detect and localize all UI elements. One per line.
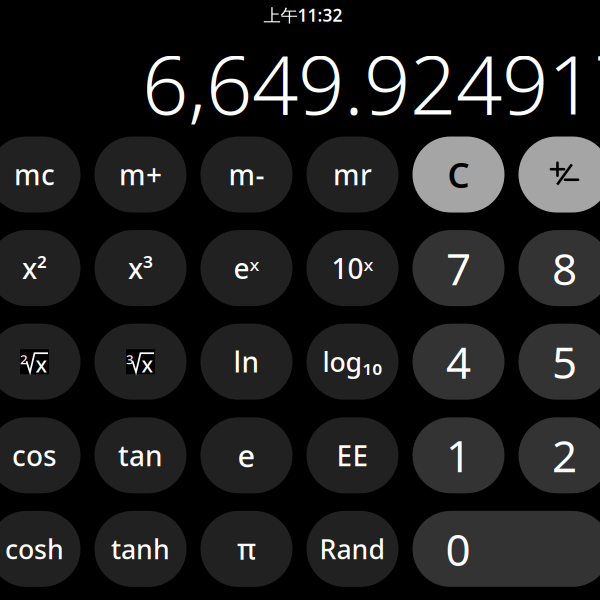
staticText: tan (118, 437, 163, 474)
button[interactable] (412, 324, 504, 400)
button[interactable] (306, 324, 398, 400)
staticText: x (35, 350, 47, 378)
staticText: 8 (552, 239, 577, 297)
button[interactable] (0, 417, 80, 493)
button[interactable] (306, 417, 398, 493)
button[interactable] (518, 324, 600, 400)
button[interactable] (306, 511, 398, 587)
staticText: mc (14, 156, 55, 193)
button[interactable] (0, 136, 80, 212)
staticText: 0 (445, 520, 470, 578)
button[interactable] (412, 417, 504, 493)
button[interactable] (94, 511, 186, 587)
button[interactable] (518, 417, 600, 493)
staticText: Rand (319, 531, 385, 567)
button[interactable] (94, 230, 186, 306)
button[interactable]: Plus minus (518, 136, 600, 212)
staticText: 10ˣ (331, 249, 373, 287)
staticText: 2 (552, 426, 577, 484)
button[interactable] (0, 324, 80, 400)
button[interactable] (200, 417, 292, 493)
staticText: log₁₀ (322, 344, 382, 379)
staticText: 6,649.9249173 (142, 29, 600, 137)
button[interactable] (306, 136, 398, 212)
staticText: 3 (126, 350, 134, 368)
button[interactable] (0, 511, 80, 587)
button[interactable] (200, 230, 292, 306)
staticText: cosh (5, 531, 64, 567)
button[interactable] (200, 136, 292, 212)
button[interactable] (412, 230, 504, 306)
button[interactable] (518, 230, 600, 306)
staticText: cos (12, 437, 57, 474)
button[interactable] (306, 230, 398, 306)
staticText: C (447, 151, 469, 197)
staticText: 2 (20, 350, 28, 368)
button[interactable] (0, 230, 80, 306)
button[interactable] (94, 136, 186, 212)
staticText: EE (336, 437, 368, 474)
staticText: tanh (111, 531, 170, 567)
staticText: 5 (552, 332, 577, 391)
staticText: m+ (119, 156, 162, 193)
staticText: 4 (446, 332, 471, 391)
staticText: x (141, 350, 153, 378)
staticText: 1 (446, 426, 471, 484)
staticText: ln (233, 343, 259, 380)
button[interactable] (412, 511, 600, 587)
staticText: eˣ (233, 249, 259, 287)
button[interactable] (412, 136, 504, 212)
staticText: m- (228, 156, 264, 193)
staticText: x³ (128, 249, 153, 287)
staticText: 上午11:32 (263, 3, 342, 26)
staticText: mr (333, 156, 372, 193)
staticText: e (237, 435, 255, 476)
button[interactable] (200, 511, 292, 587)
button[interactable] (94, 324, 186, 400)
button[interactable] (94, 417, 186, 493)
button[interactable] (200, 324, 292, 400)
staticText: 7 (446, 239, 471, 297)
staticText: π (237, 530, 256, 567)
staticText: x² (22, 249, 47, 287)
